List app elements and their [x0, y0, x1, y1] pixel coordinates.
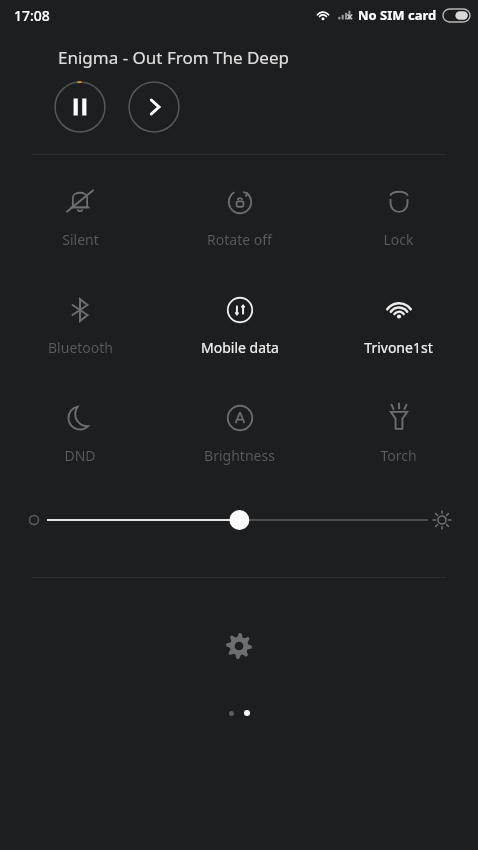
staticText: 17:08 — [14, 6, 50, 25]
staticText: Trivone1st — [364, 338, 433, 357]
button[interactable]: Brightness — [160, 399, 319, 467]
button[interactable]: Rotate off — [160, 183, 319, 251]
staticText: DND — [64, 446, 96, 465]
staticText: Brightness — [204, 446, 275, 465]
staticText: No SIM card — [358, 6, 437, 24]
button[interactable]: DND — [0, 399, 160, 467]
staticText: Silent — [62, 230, 99, 249]
button[interactable]: Next — [128, 81, 180, 133]
staticText: Rotate off — [207, 230, 272, 249]
staticText: Enigma - Out From The Deep — [58, 46, 289, 69]
staticText: Mobile data — [201, 338, 279, 357]
button[interactable] — [32, 503, 446, 537]
button[interactable]: Lock — [319, 183, 478, 251]
button[interactable]: Settings — [215, 622, 263, 670]
staticText: Bluetooth — [48, 338, 113, 357]
staticText: Lock — [383, 230, 414, 249]
staticText: Torch — [380, 446, 417, 465]
button[interactable]: Silent — [0, 183, 160, 251]
button[interactable]: Trivone1st — [319, 291, 478, 359]
button[interactable]: Pause — [54, 81, 106, 133]
button[interactable]: Bluetooth — [0, 291, 160, 359]
button[interactable]: Torch — [319, 399, 478, 467]
button[interactable]: Mobile data — [160, 291, 319, 359]
